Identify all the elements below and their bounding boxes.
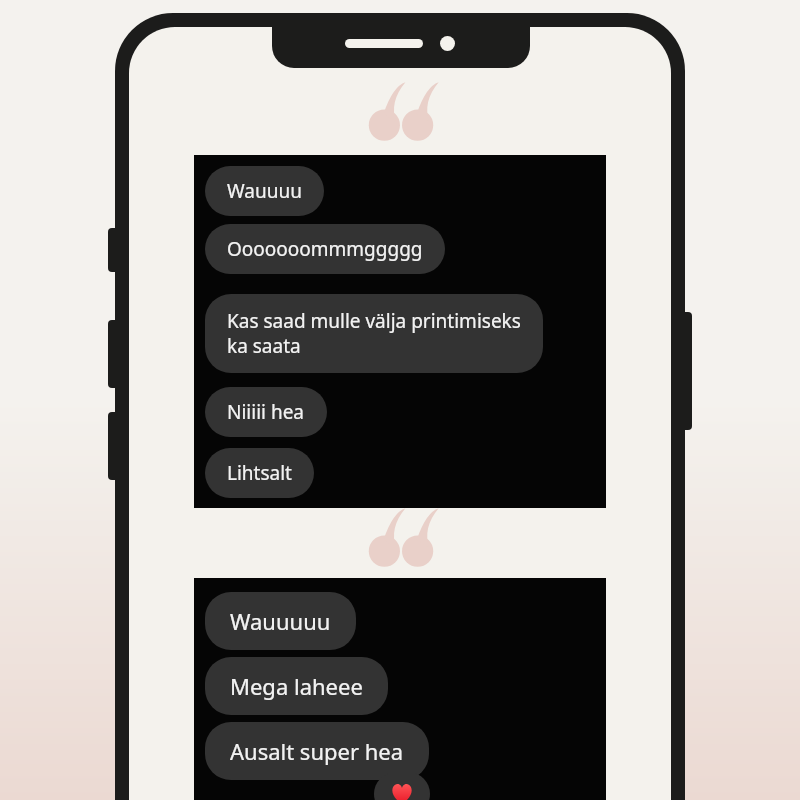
staticText: Ooooooommmggggg	[227, 236, 423, 262]
button[interactable]: Wauuuuu	[205, 592, 356, 650]
staticText: Lihtsalt	[227, 460, 292, 486]
button[interactable]: Wauuuu	[205, 166, 324, 216]
button[interactable]: Ausalt super hea	[205, 722, 429, 780]
staticText: Ausalt super hea	[230, 736, 404, 766]
button[interactable]: Wauuuu	[194, 155, 606, 508]
staticText: Mega laheee	[230, 671, 363, 701]
staticText: Niiiii hea	[227, 399, 305, 425]
staticText: Kas saad mulle välja printimiseks ka saa…	[227, 308, 521, 359]
button[interactable]: Lihtsalt	[205, 448, 314, 498]
button[interactable]: Wauuuuu	[194, 578, 606, 800]
button[interactable]: Power button	[683, 312, 692, 430]
button[interactable]: Volume button	[108, 320, 117, 388]
button[interactable]: Volume button	[108, 412, 117, 480]
staticText: Wauuuuu	[230, 606, 331, 636]
button[interactable]: Niiiii hea	[205, 387, 327, 437]
staticText: Wauuuu	[227, 178, 302, 204]
button[interactable]: Kas saad mulle välja printimiseks ka saa…	[205, 294, 543, 373]
button[interactable]: Ooooooommmggggg	[205, 224, 445, 274]
button[interactable]: Mega laheee	[205, 657, 388, 715]
button[interactable]: Volume button	[108, 228, 117, 272]
